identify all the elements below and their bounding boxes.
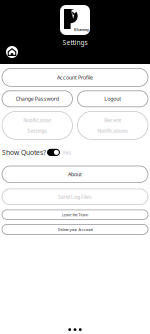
staticText: Leave the Team (61, 212, 88, 217)
button[interactable]: Home (6, 46, 18, 58)
button[interactable]: Delete your Account (2, 224, 148, 234)
staticText: Settings (27, 127, 47, 134)
button[interactable]: Logout (77, 91, 148, 107)
staticText: Recent (104, 117, 121, 124)
staticText: Show Quotes? (2, 148, 46, 157)
button[interactable]: Leave the Team (2, 210, 148, 219)
staticText: Account Profile (57, 74, 93, 81)
staticText: Blueway (74, 27, 89, 32)
button[interactable]: Show Quotes (47, 149, 60, 156)
button[interactable]: About (2, 166, 148, 182)
staticText: Yes (62, 149, 71, 156)
staticText: Delete your Account (57, 227, 92, 232)
staticText: Notifications (97, 127, 128, 134)
staticText: About (68, 171, 82, 178)
staticText: Notification (23, 117, 51, 124)
staticText: Logout (104, 95, 121, 102)
staticText: Settings (62, 38, 87, 47)
staticText: Send Log Files (58, 193, 92, 200)
button[interactable]: Recent (77, 111, 148, 139)
button[interactable]: Notification (2, 111, 72, 139)
button[interactable]: Send Log Files (2, 189, 148, 205)
button[interactable]: Change Password (2, 91, 72, 107)
button[interactable]: Account Profile (2, 68, 148, 86)
staticText: Change Password (16, 95, 59, 102)
